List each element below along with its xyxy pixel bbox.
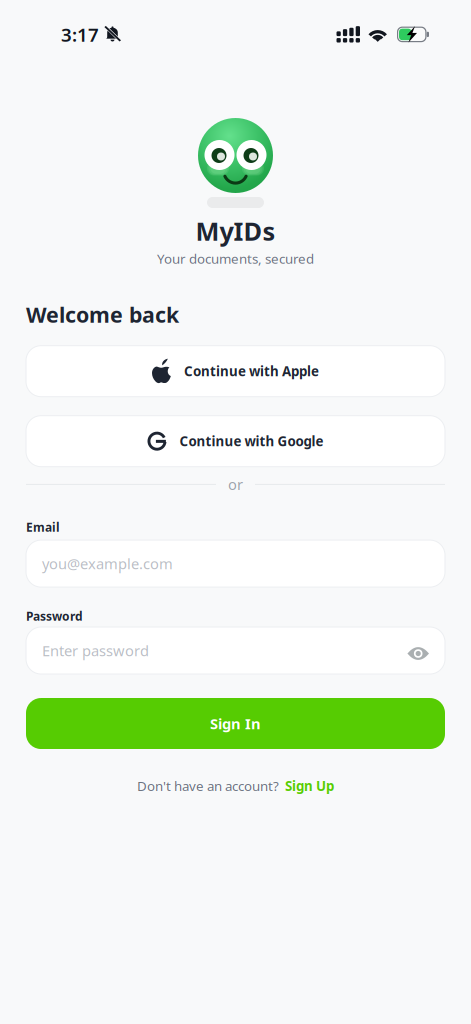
staticText: Continue with Google [179,432,323,450]
staticText: Email [26,519,60,535]
staticText: 3:17 [61,22,99,47]
button[interactable]: Continue with Google [26,416,445,467]
button[interactable]: Sign In [26,698,445,749]
button[interactable]: Continue with Apple [26,346,445,397]
staticText: Password [26,608,83,624]
staticText: you@example.com [42,554,173,573]
staticText: Sign In [210,714,261,733]
staticText: Your documents, secured [157,250,314,267]
staticText: Enter password [42,641,149,660]
staticText: Sign Up [285,777,334,795]
staticText: Welcome back [26,300,179,329]
button[interactable]: Sign Up [285,777,334,795]
staticText: or [228,475,243,494]
button[interactable]: Show password [407,644,429,657]
staticText: Don't have an account? [137,777,279,795]
staticText: MyIDs [195,214,275,248]
staticText: Continue with Apple [184,362,319,380]
